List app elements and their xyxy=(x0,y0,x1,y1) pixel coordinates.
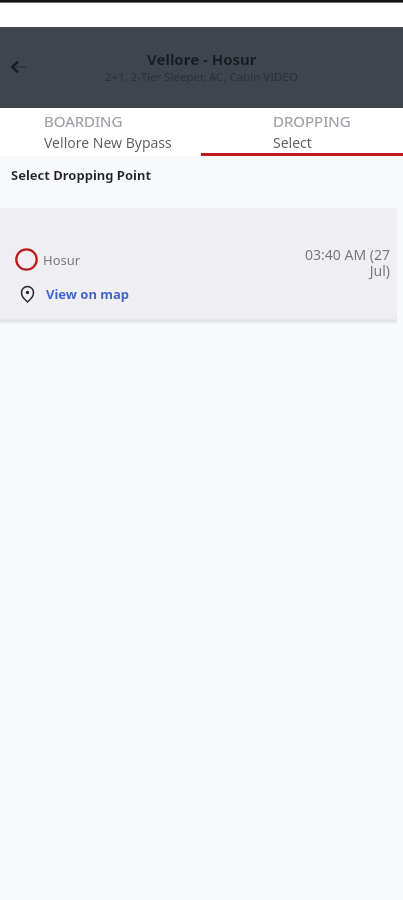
button[interactable]: Hosur xyxy=(0,208,397,319)
staticText: BOARDING xyxy=(44,111,123,131)
staticText: Vellore New Bypass xyxy=(44,133,172,152)
staticText: Vellore - Hosur xyxy=(147,49,257,69)
staticText: Hosur xyxy=(43,251,81,269)
button[interactable]: BOARDING xyxy=(0,108,201,156)
staticText: Select Dropping Point xyxy=(11,166,152,184)
staticText: 2+1, 2-Tier Sleeper, AC, Cabin VIDEO xyxy=(105,69,298,85)
staticText: View on map xyxy=(46,285,129,303)
staticText: DROPPING xyxy=(273,111,351,131)
button[interactable]: DROPPING xyxy=(201,108,403,156)
staticText: 03:40 AM (27 Jul) xyxy=(305,245,390,280)
button[interactable]: Back xyxy=(4,52,34,82)
button[interactable]: View on map xyxy=(20,285,129,303)
staticText: Select xyxy=(273,133,312,152)
